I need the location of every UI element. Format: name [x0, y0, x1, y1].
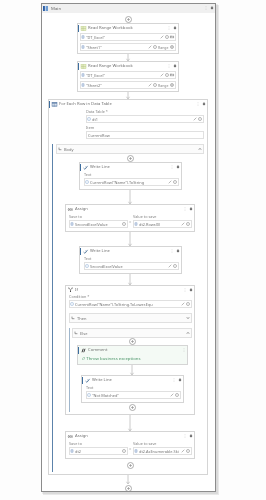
staticText: dt2.Rows(0)("Name").Str — [139, 222, 181, 227]
button[interactable]: More options — [204, 6, 208, 10]
button[interactable]: Main — [41, 3, 216, 13]
staticText: Text — [84, 256, 92, 261]
button[interactable]: Add activity — [127, 155, 134, 162]
button[interactable]: Read Range Workbook — [77, 23, 179, 33]
staticText: SecondExcelValue — [75, 222, 122, 227]
button[interactable]: Pin — [173, 64, 177, 68]
staticText: // Throw business exceptions — [82, 355, 141, 361]
staticText: Text — [86, 385, 94, 390]
button[interactable]: Write Line — [81, 375, 184, 385]
staticText: CurrentRow("Name").ToString — [90, 180, 168, 185]
button[interactable]: CurrentRow("Name").ToString — [84, 178, 179, 186]
staticText: Save to — [69, 214, 82, 219]
staticText: Assign — [75, 433, 183, 439]
staticText: SecondExcelValue — [90, 264, 168, 269]
staticText: Text — [84, 172, 92, 177]
button[interactable]: Then — [69, 313, 192, 323]
staticText: Value to save — [133, 441, 157, 446]
button[interactable]: dt2.Rows(0)("Name").Str — [133, 220, 192, 228]
staticText: Then — [77, 316, 186, 321]
button[interactable]: Pin — [178, 378, 182, 382]
staticText: dt2.AsEnumerable.Ski — [139, 449, 181, 454]
button[interactable]: More options — [196, 102, 200, 106]
staticText: Body — [64, 147, 198, 152]
button[interactable]: SecondExcelValue — [84, 262, 179, 270]
button[interactable]: "Sheet2" — [80, 81, 176, 89]
button[interactable]: Pin — [173, 26, 177, 30]
button[interactable]: Add activity — [125, 485, 132, 492]
staticText: Main — [51, 5, 204, 11]
staticText: Else — [80, 331, 186, 336]
button[interactable]: More options — [183, 207, 187, 211]
button[interactable]: Add activity — [125, 16, 132, 23]
staticText: dt2 — [75, 449, 122, 454]
staticText: Write Line — [90, 248, 170, 254]
button[interactable]: Pin — [202, 102, 206, 106]
staticText: Range — [158, 45, 169, 50]
button[interactable]: CurrentRow("Name").ToString.ToLower.Equ — [69, 300, 192, 308]
button[interactable]: "DT_Excel" — [80, 71, 176, 79]
staticText: Read Range Workbook — [88, 25, 167, 31]
staticText: For Each Row in Data Table — [59, 101, 196, 107]
button[interactable]: "Sheet1" — [80, 43, 176, 51]
button[interactable]: CurrentRow — [86, 131, 204, 139]
staticText: Write Line — [92, 377, 172, 383]
staticText: If — [75, 287, 183, 293]
staticText: "DT_Excel" — [86, 73, 160, 78]
staticText: Value to save — [133, 214, 157, 219]
staticText: Range — [158, 83, 169, 88]
button[interactable]: Add activity — [129, 404, 136, 411]
button[interactable]: Pin — [210, 6, 214, 10]
button[interactable]: "DT_Excel" — [80, 33, 176, 41]
button[interactable]: Pin — [189, 288, 193, 292]
button[interactable]: Comment — [77, 345, 188, 355]
button[interactable]: Body — [56, 144, 204, 154]
staticText: "DT_Excel" — [86, 35, 160, 40]
staticText: CurrentRow("Name").ToString.ToLower.Equ — [75, 302, 181, 307]
staticText: Save to — [69, 441, 82, 446]
staticText: "Not Matched" — [92, 393, 170, 398]
button[interactable]: Assign — [65, 431, 195, 441]
button[interactable]: "Not Matched" — [86, 391, 181, 399]
button[interactable]: SecondExcelValue — [69, 220, 128, 228]
staticText: dt1 — [92, 117, 193, 122]
staticText: "Sheet1" — [86, 45, 148, 50]
button[interactable]: Pin — [189, 207, 193, 211]
button[interactable]: Add activity — [129, 338, 136, 345]
button[interactable]: More options — [170, 165, 174, 169]
button[interactable]: Write Line — [79, 246, 182, 256]
staticText: Assign — [75, 206, 183, 212]
button[interactable]: Add activity — [127, 462, 134, 469]
button[interactable]: More options — [170, 249, 174, 253]
staticText: Read Range Workbook — [88, 63, 167, 69]
staticText: Item — [86, 125, 95, 130]
staticText: Comment — [88, 347, 182, 353]
button[interactable]: Else — [72, 328, 192, 338]
button[interactable]: More options — [183, 288, 187, 292]
button[interactable]: More options — [167, 64, 171, 68]
button[interactable]: More options — [182, 348, 186, 352]
staticText: CurrentRow — [88, 133, 110, 138]
button[interactable]: dt1 — [86, 115, 204, 123]
button[interactable]: Pin — [189, 434, 193, 438]
staticText: Condition * — [69, 294, 90, 299]
button[interactable]: If — [65, 285, 195, 294]
staticText: Write Line — [90, 164, 170, 170]
button[interactable]: More options — [167, 26, 171, 30]
staticText: Data Table * — [86, 109, 108, 114]
button[interactable]: More options — [172, 378, 176, 382]
button[interactable]: Pin — [176, 165, 180, 169]
staticText: = — [129, 446, 132, 451]
staticText: "Sheet2" — [86, 83, 148, 88]
button[interactable]: Pin — [176, 249, 180, 253]
button[interactable]: For Each Row in Data Table — [48, 99, 208, 109]
button[interactable]: Read Range Workbook — [77, 61, 179, 71]
button[interactable]: dt2.AsEnumerable.Ski — [133, 447, 192, 455]
button[interactable]: dt2 — [69, 447, 128, 455]
staticText: = — [129, 219, 132, 224]
button[interactable]: Assign — [65, 204, 195, 214]
button[interactable]: Write Line — [79, 162, 182, 172]
button[interactable]: More options — [183, 434, 187, 438]
